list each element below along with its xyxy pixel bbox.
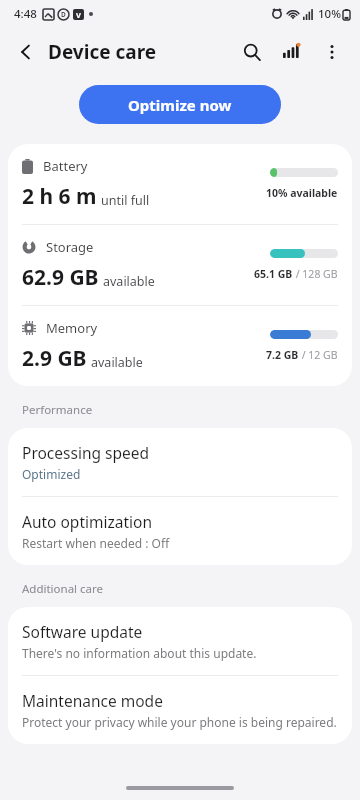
staticText: Processing speed (22, 442, 149, 463)
button[interactable]: Maintenance mode (8, 676, 352, 744)
button[interactable]: More options (312, 32, 352, 72)
staticText: Optimize now (128, 95, 232, 115)
staticText: / 128 GB (293, 267, 338, 281)
button[interactable]: Search (232, 32, 272, 72)
button[interactable]: Auto optimization (8, 497, 352, 565)
button[interactable]: Back (8, 34, 44, 70)
staticText: Storage (46, 238, 94, 256)
staticText: until full (101, 192, 150, 209)
staticText: 2.9 GB (22, 344, 87, 373)
staticText: Auto optimization (22, 511, 153, 532)
staticText: Maintenance mode (22, 690, 163, 711)
button[interactable]: Memory (8, 306, 352, 386)
staticText: Additional care (22, 581, 104, 597)
staticText: 10% available (266, 186, 338, 200)
staticText: Performance (22, 402, 93, 418)
staticText: 62.9 GB (22, 263, 99, 292)
staticText: 65.1 GB (254, 267, 293, 281)
button[interactable]: Battery (8, 144, 352, 224)
staticText: V (76, 10, 81, 20)
staticText: 4:48 (14, 6, 37, 22)
staticText: Optimized (22, 466, 81, 482)
button[interactable]: Software update (8, 607, 352, 675)
button[interactable]: Usage statistics (272, 32, 312, 72)
staticText: / 12 GB (299, 348, 338, 362)
staticText: Device care (48, 39, 157, 65)
button[interactable]: Processing speed (8, 428, 352, 496)
staticText: Software update (22, 621, 143, 642)
staticText: There's no information about this update… (22, 645, 257, 661)
staticText: Restart when needed : Off (22, 535, 170, 551)
staticText: Memory (46, 319, 98, 337)
staticText: 7.2 GB (266, 348, 299, 362)
button[interactable]: Optimize now (79, 85, 281, 124)
staticText: 2 h 6 m (22, 182, 97, 211)
staticText: available (91, 354, 143, 371)
staticText: Protect your privacy while your phone is… (22, 714, 337, 730)
staticText: Battery (43, 157, 88, 175)
staticText: D (61, 10, 66, 19)
staticText: 10% (318, 6, 341, 22)
button[interactable]: Storage (8, 225, 352, 305)
staticText: available (103, 273, 155, 290)
